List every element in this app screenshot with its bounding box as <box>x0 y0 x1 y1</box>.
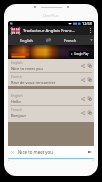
button[interactable]: Share <box>81 64 85 68</box>
staticText: Traducteur Anglais Franc... <box>23 28 87 34</box>
button[interactable]: Copy <box>88 97 92 101</box>
button[interactable]: Copy <box>88 111 92 115</box>
staticText: French <box>11 107 22 112</box>
staticText: French <box>11 74 22 79</box>
button[interactable]: Clear <box>10 150 15 155</box>
staticText: OnePlus <box>43 13 59 18</box>
button[interactable]: More options <box>87 26 93 35</box>
staticText: English <box>11 93 23 98</box>
staticText: Nice to meet you <box>18 149 88 155</box>
button[interactable]: Share <box>81 97 85 101</box>
staticText: French <box>64 38 77 43</box>
button[interactable]: Open menu <box>88 35 94 45</box>
button[interactable]: Send <box>88 150 92 154</box>
button[interactable]: Share <box>81 111 85 115</box>
button[interactable]: Google Play <box>8 45 94 59</box>
staticText: Google Play <box>74 52 89 56</box>
staticText: Ravi de vous rencontrer <box>11 80 56 85</box>
button[interactable]: Copy <box>88 78 92 82</box>
button[interactable]: English <box>8 89 94 122</box>
button[interactable]: French <box>52 35 88 45</box>
button[interactable]: English <box>8 59 94 86</box>
button[interactable]: English <box>8 35 44 45</box>
staticText: Bonjour <box>11 113 27 118</box>
button[interactable]: Swap languages <box>44 35 52 45</box>
button[interactable]: Copy <box>88 64 92 68</box>
staticText: English <box>20 38 33 43</box>
staticText: 12:58 <box>82 21 92 26</box>
staticText: English <box>11 60 23 65</box>
staticText: Hello <box>11 99 21 104</box>
button[interactable]: Share <box>81 78 85 82</box>
staticText: Nice to meet you <box>11 66 43 71</box>
